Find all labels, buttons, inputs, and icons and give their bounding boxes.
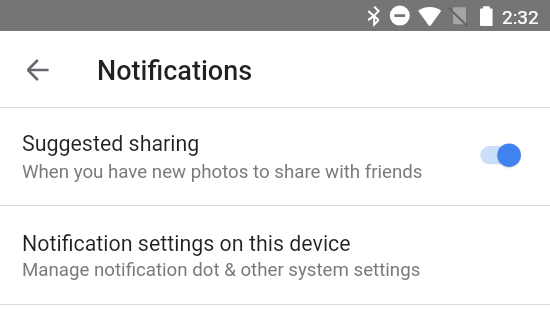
staticText: Notifications (97, 55, 253, 87)
staticText: When you have new photos to share with f… (22, 161, 423, 183)
staticText: Manage notification dot & other system s… (22, 259, 421, 281)
button[interactable]: Suggested sharing (0, 108, 550, 205)
staticText: Suggested sharing (22, 131, 200, 156)
staticText: Notification settings on this device (22, 231, 351, 256)
button[interactable]: Navigate up (16, 48, 60, 92)
button[interactable]: Notification settings on this device (0, 206, 550, 304)
staticText: 2:32 (502, 6, 539, 28)
button[interactable]: Suggested sharing, on (470, 128, 528, 184)
